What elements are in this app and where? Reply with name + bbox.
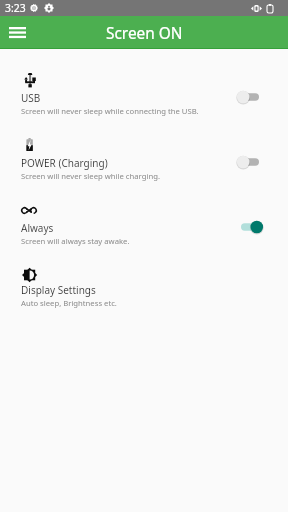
button[interactable]: Off xyxy=(225,153,259,171)
button[interactable]: On xyxy=(225,218,259,236)
staticText: Screen ON xyxy=(106,23,183,44)
staticText: Screen will never sleep while connecting… xyxy=(21,106,199,116)
button[interactable]: Open navigation menu xyxy=(5,20,30,45)
staticText: 3:23 xyxy=(5,1,26,15)
staticText: Auto sleep, Brightness etc. xyxy=(21,298,117,308)
button[interactable]: USB xyxy=(0,73,288,138)
button[interactable]: Off xyxy=(225,88,259,106)
button[interactable]: Display Settings xyxy=(0,268,288,333)
staticText: Screen will always stay awake. xyxy=(21,236,130,246)
staticText: USB xyxy=(21,91,41,105)
staticText: Display Settings xyxy=(21,283,96,297)
staticText: Screen will never sleep while charging. xyxy=(21,171,160,181)
staticText: POWER (Charging) xyxy=(21,156,108,170)
button[interactable]: POWER (Charging) xyxy=(0,138,288,203)
button[interactable]: Always xyxy=(0,203,288,268)
staticText: Always xyxy=(21,221,54,235)
